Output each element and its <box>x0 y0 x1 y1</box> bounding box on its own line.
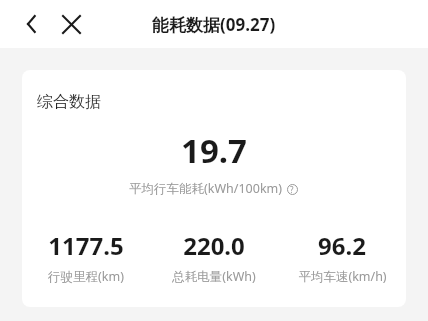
staticText: ? <box>290 184 294 195</box>
staticText: 平均车速(km/h) <box>298 268 387 285</box>
staticText: 总耗电量(kWh) <box>172 268 256 285</box>
staticText: 1177.5 <box>48 229 124 262</box>
button[interactable]: 综合数据 <box>22 70 406 307</box>
button[interactable]: 1177.5 <box>22 229 150 285</box>
staticText: 96.2 <box>318 229 366 262</box>
staticText: 综合数据 <box>37 92 101 112</box>
staticText: 能耗数据(09.27) <box>152 13 276 36</box>
button[interactable]: 96.2 <box>278 229 406 285</box>
button[interactable]: Back <box>14 6 50 42</box>
button[interactable]: Close <box>53 6 89 42</box>
button[interactable]: 220.0 <box>150 229 278 285</box>
staticText: 220.0 <box>183 229 245 262</box>
staticText: 平均行车能耗(kWh/100km) <box>129 180 282 197</box>
staticText: 行驶里程(km) <box>48 268 124 285</box>
staticText: 19.7 <box>22 128 406 173</box>
button[interactable]: Help <box>284 181 300 197</box>
